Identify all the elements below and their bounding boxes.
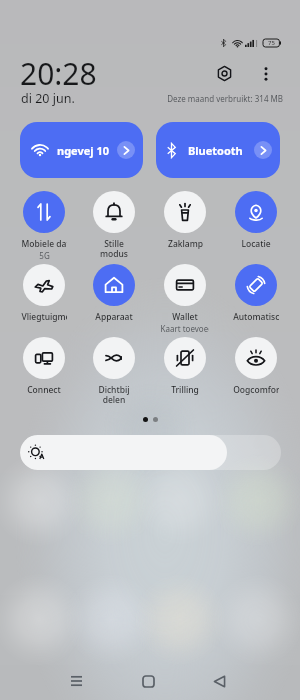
button[interactable]: Zaklamp [149,191,220,250]
staticText: Connect [27,384,61,396]
button[interactable]: Stille modus [79,191,149,259]
button[interactable]: Brightness [20,435,281,470]
staticText: Deze maand verbruikt: 314 MB [0,93,283,104]
button[interactable]: More options [252,60,279,87]
staticText: Oogcomfort [233,384,279,396]
button[interactable]: Oogcomfort [220,337,291,396]
staticText: Mobiele data [21,238,67,250]
button[interactable]: Connect [9,337,79,396]
staticText: 5G [39,250,50,261]
button[interactable]: Dichtbij delen [79,337,149,405]
staticText: Bluetooth [188,143,251,158]
staticText: Apparaat [95,311,133,323]
button[interactable]: Recent apps [56,661,96,700]
staticText: Locatie [241,238,271,250]
button[interactable]: Locatie [220,191,291,250]
button[interactable]: Trilling [149,337,220,396]
staticText: Automatisch draaien [233,311,279,323]
button[interactable]: Automatisch draaien [220,264,291,323]
staticText: 20:28 [20,53,97,94]
staticText: Kaart toevoegen [160,323,209,334]
button[interactable]: Vliegtuigmodus [9,264,79,323]
staticText: Dichtbij delen [91,384,137,405]
staticText: di 20 jun. [21,90,75,107]
staticText: Vliegtuigmodus [21,311,67,323]
button[interactable]: Home [128,661,168,700]
button[interactable]: Bluetooth [156,122,280,178]
staticText: Wallet [172,311,198,323]
button[interactable]: Apparaat [79,264,149,323]
staticText: ngevej 10 [57,143,114,158]
staticText: Trilling [171,384,199,396]
button[interactable]: Mobiele data [9,191,79,261]
button[interactable]: Wallet [149,264,220,334]
button[interactable]: Settings [211,60,238,87]
button[interactable]: Back [199,661,239,700]
staticText: Stille modus [91,238,137,259]
staticText: 75 [268,39,275,47]
button[interactable]: Wi-Fi [20,122,143,178]
staticText: Zaklamp [168,238,203,250]
